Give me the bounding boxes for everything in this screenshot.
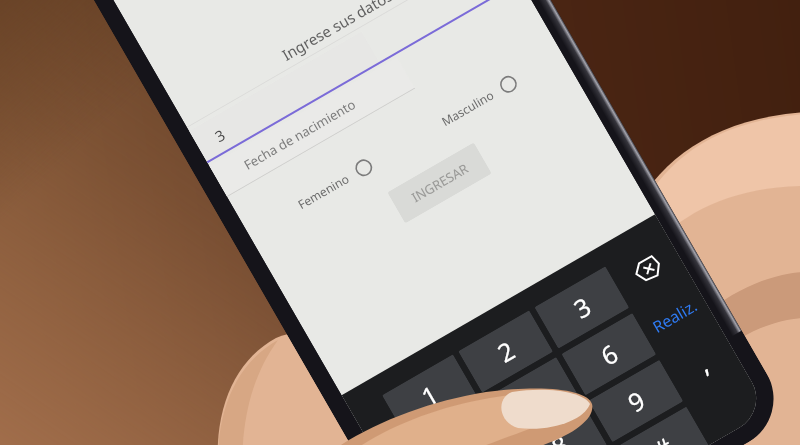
button[interactable]: 3 [534, 266, 629, 349]
button[interactable]: 2 [458, 310, 553, 393]
button[interactable]: Masculino [438, 72, 521, 130]
staticText: 3 [567, 289, 597, 326]
staticText: 3 [211, 124, 229, 146]
button[interactable] [691, 374, 764, 442]
button[interactable]: 6 [561, 313, 656, 395]
button[interactable]: # [615, 406, 709, 445]
staticText: # [647, 428, 679, 445]
staticText: 2 [491, 333, 521, 370]
staticText: 8 [545, 426, 575, 445]
staticText: 9 [621, 382, 651, 419]
button[interactable]: 1 [382, 354, 477, 437]
staticText: Fecha de nacimiento [240, 95, 359, 174]
staticText: 1 [415, 377, 445, 414]
button[interactable]: , [664, 328, 739, 398]
button[interactable]: 5 [485, 357, 580, 439]
button[interactable]: Realiz. [637, 281, 712, 351]
staticText: Femenino [295, 170, 352, 212]
button[interactable]: Femenino [294, 155, 376, 213]
staticText: Masculino [439, 86, 497, 129]
staticText: 5 [518, 379, 548, 416]
button[interactable]: 9 [588, 360, 683, 442]
button[interactable]: 8 [512, 404, 607, 445]
button[interactable]: INGRESAR [387, 142, 492, 224]
staticText: Ingrese sus datos [278, 0, 396, 65]
staticText: INGRESAR [408, 159, 472, 206]
button[interactable]: 4 [409, 401, 504, 445]
staticText: , [691, 346, 714, 380]
staticText: Realiz. [648, 294, 702, 338]
staticText: 6 [594, 335, 624, 372]
button[interactable]: Backspace [610, 234, 685, 305]
